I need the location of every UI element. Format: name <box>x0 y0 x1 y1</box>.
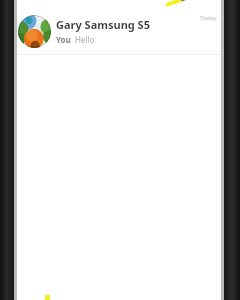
staticText: Today <box>200 14 217 22</box>
staticText: Hello <box>75 34 95 45</box>
button[interactable]: Gary Samsung S5 <box>17 8 221 54</box>
button[interactable]: Compose new message <box>165 0 187 6</box>
staticText: You <box>56 34 71 45</box>
staticText: Gary Samsung S5 <box>56 17 150 32</box>
